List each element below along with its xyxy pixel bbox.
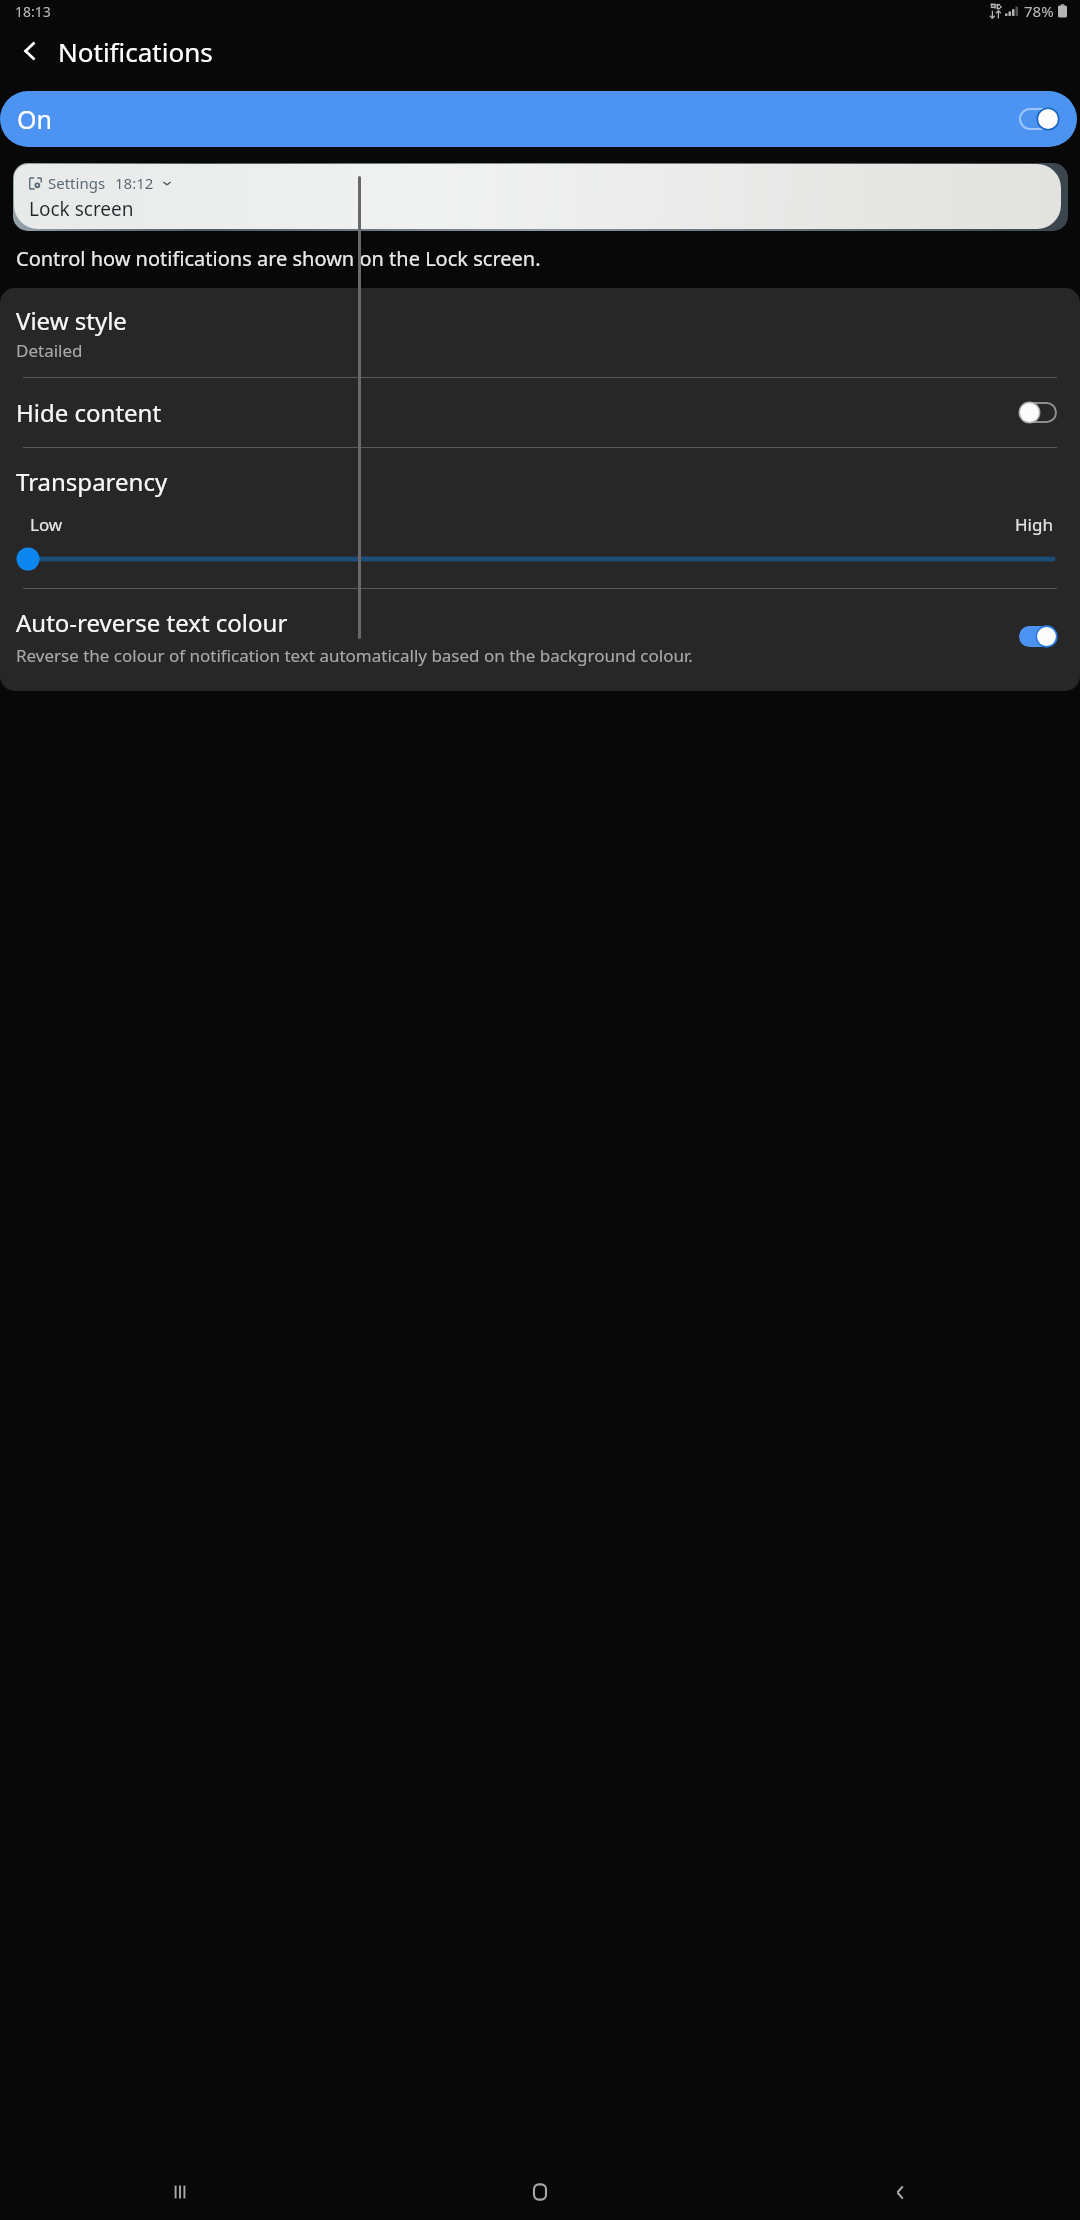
button[interactable]: Hide content, off	[1019, 402, 1057, 423]
button[interactable]: Transparency slider	[0, 542, 1080, 576]
staticText: Low	[30, 513, 63, 536]
button[interactable]: View style	[0, 288, 1080, 377]
staticText: Hide content	[16, 396, 1019, 429]
button[interactable]: Back	[6, 27, 54, 75]
staticText: On	[17, 102, 52, 136]
button[interactable]: Settings	[13, 163, 1068, 231]
button[interactable]: Auto-reverse text colour	[0, 589, 1080, 691]
staticText: 18:12	[115, 173, 154, 193]
staticText: High	[1015, 513, 1053, 536]
button[interactable]: Hide content	[0, 378, 1080, 447]
staticText: 78%	[1024, 1, 1054, 21]
button[interactable]: Auto-reverse text colour, on	[1019, 626, 1057, 647]
staticText: Detailed	[16, 339, 83, 362]
button[interactable]: Home	[360, 2164, 720, 2220]
staticText: View style	[16, 304, 127, 337]
staticText: Settings	[48, 173, 106, 193]
staticText: 18:13	[15, 2, 51, 21]
staticText: Hello!	[29, 224, 73, 229]
staticText: Notifications	[58, 34, 213, 69]
button[interactable]: Recent apps	[0, 2164, 360, 2220]
staticText: Reverse the colour of notification text …	[16, 644, 693, 667]
button[interactable]: On	[0, 91, 1077, 147]
staticText: Control how notifications are shown on t…	[16, 245, 541, 272]
staticText: Auto-reverse text colour	[16, 606, 288, 639]
staticText: Transparency	[16, 465, 168, 498]
staticText: Lock screen	[29, 196, 134, 222]
button[interactable]: Back	[720, 2164, 1080, 2220]
